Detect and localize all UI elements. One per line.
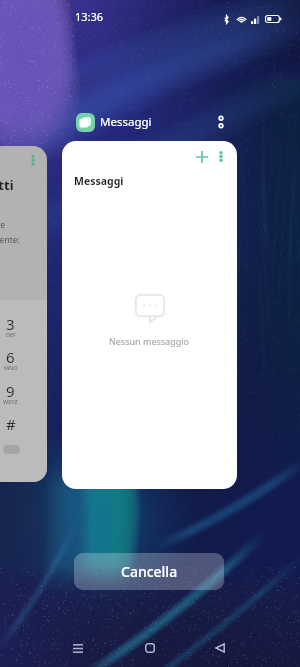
button[interactable]: Home [132, 630, 168, 666]
staticText: Chiamati di recente: [0, 234, 20, 246]
staticText: 6 [6, 347, 15, 367]
button[interactable]: Recents [60, 630, 96, 666]
staticText: Cancella [121, 562, 178, 581]
staticText: DEF [6, 331, 16, 338]
staticText: # [6, 414, 16, 434]
staticText: 13:36 [75, 9, 104, 24]
staticText: MNO [4, 364, 18, 371]
staticText: Contatti [0, 176, 14, 194]
button[interactable]: Contatti [0, 146, 47, 482]
button[interactable]: Nuovo messaggio [190, 145, 213, 168]
staticText: Messaggi [100, 114, 152, 130]
button[interactable]: Back [202, 630, 238, 666]
staticText: Messaggi [74, 174, 124, 188]
button[interactable]: Opzioni app [209, 110, 233, 134]
staticText: 9 [6, 381, 15, 401]
button[interactable]: Nuovo messaggio [62, 141, 237, 489]
staticText: 3 [6, 314, 15, 334]
staticText: Nessun messaggio [109, 335, 190, 347]
button[interactable]: Cancella [74, 553, 224, 590]
staticText: WXYZ [3, 398, 18, 405]
button[interactable]: Altre opzioni [210, 145, 232, 167]
staticText: Chiamate [0, 219, 6, 231]
